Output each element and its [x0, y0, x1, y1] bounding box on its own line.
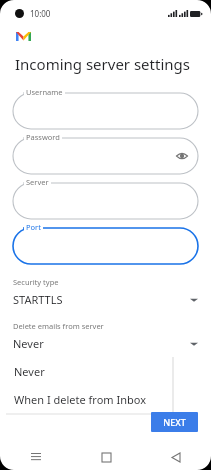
button[interactable]: Username — [13, 87, 198, 129]
staticText: Server — [26, 177, 49, 187]
staticText: 10:00 — [30, 8, 51, 19]
button[interactable]: Never — [6, 357, 172, 385]
button[interactable]: Home — [71, 444, 141, 470]
staticText: Security type — [13, 277, 59, 287]
button[interactable]: When I delete from Inbox — [6, 385, 172, 413]
staticText: Incoming server settings — [15, 54, 190, 74]
staticText: Password — [26, 132, 60, 142]
button[interactable]: NEXT — [151, 412, 198, 432]
button[interactable]: Port — [13, 222, 198, 264]
button[interactable]: Show password — [13, 132, 198, 174]
staticText: Delete emails from server — [13, 321, 104, 331]
staticText: When I delete from Inbox — [14, 392, 146, 407]
button[interactable]: Recent apps — [0, 444, 71, 470]
button[interactable]: Server — [13, 177, 198, 219]
staticText: Never — [13, 336, 190, 351]
button[interactable]: Back — [141, 444, 211, 470]
button[interactable]: Delete emails from server — [13, 319, 198, 353]
staticText: NEXT — [163, 416, 186, 428]
other: Show password — [176, 150, 188, 162]
button[interactable]: Security type — [13, 275, 198, 309]
staticText: STARTTLS — [13, 292, 190, 307]
staticText: Port — [26, 222, 41, 232]
staticText: Never — [14, 364, 45, 379]
staticText: Username — [26, 87, 63, 97]
